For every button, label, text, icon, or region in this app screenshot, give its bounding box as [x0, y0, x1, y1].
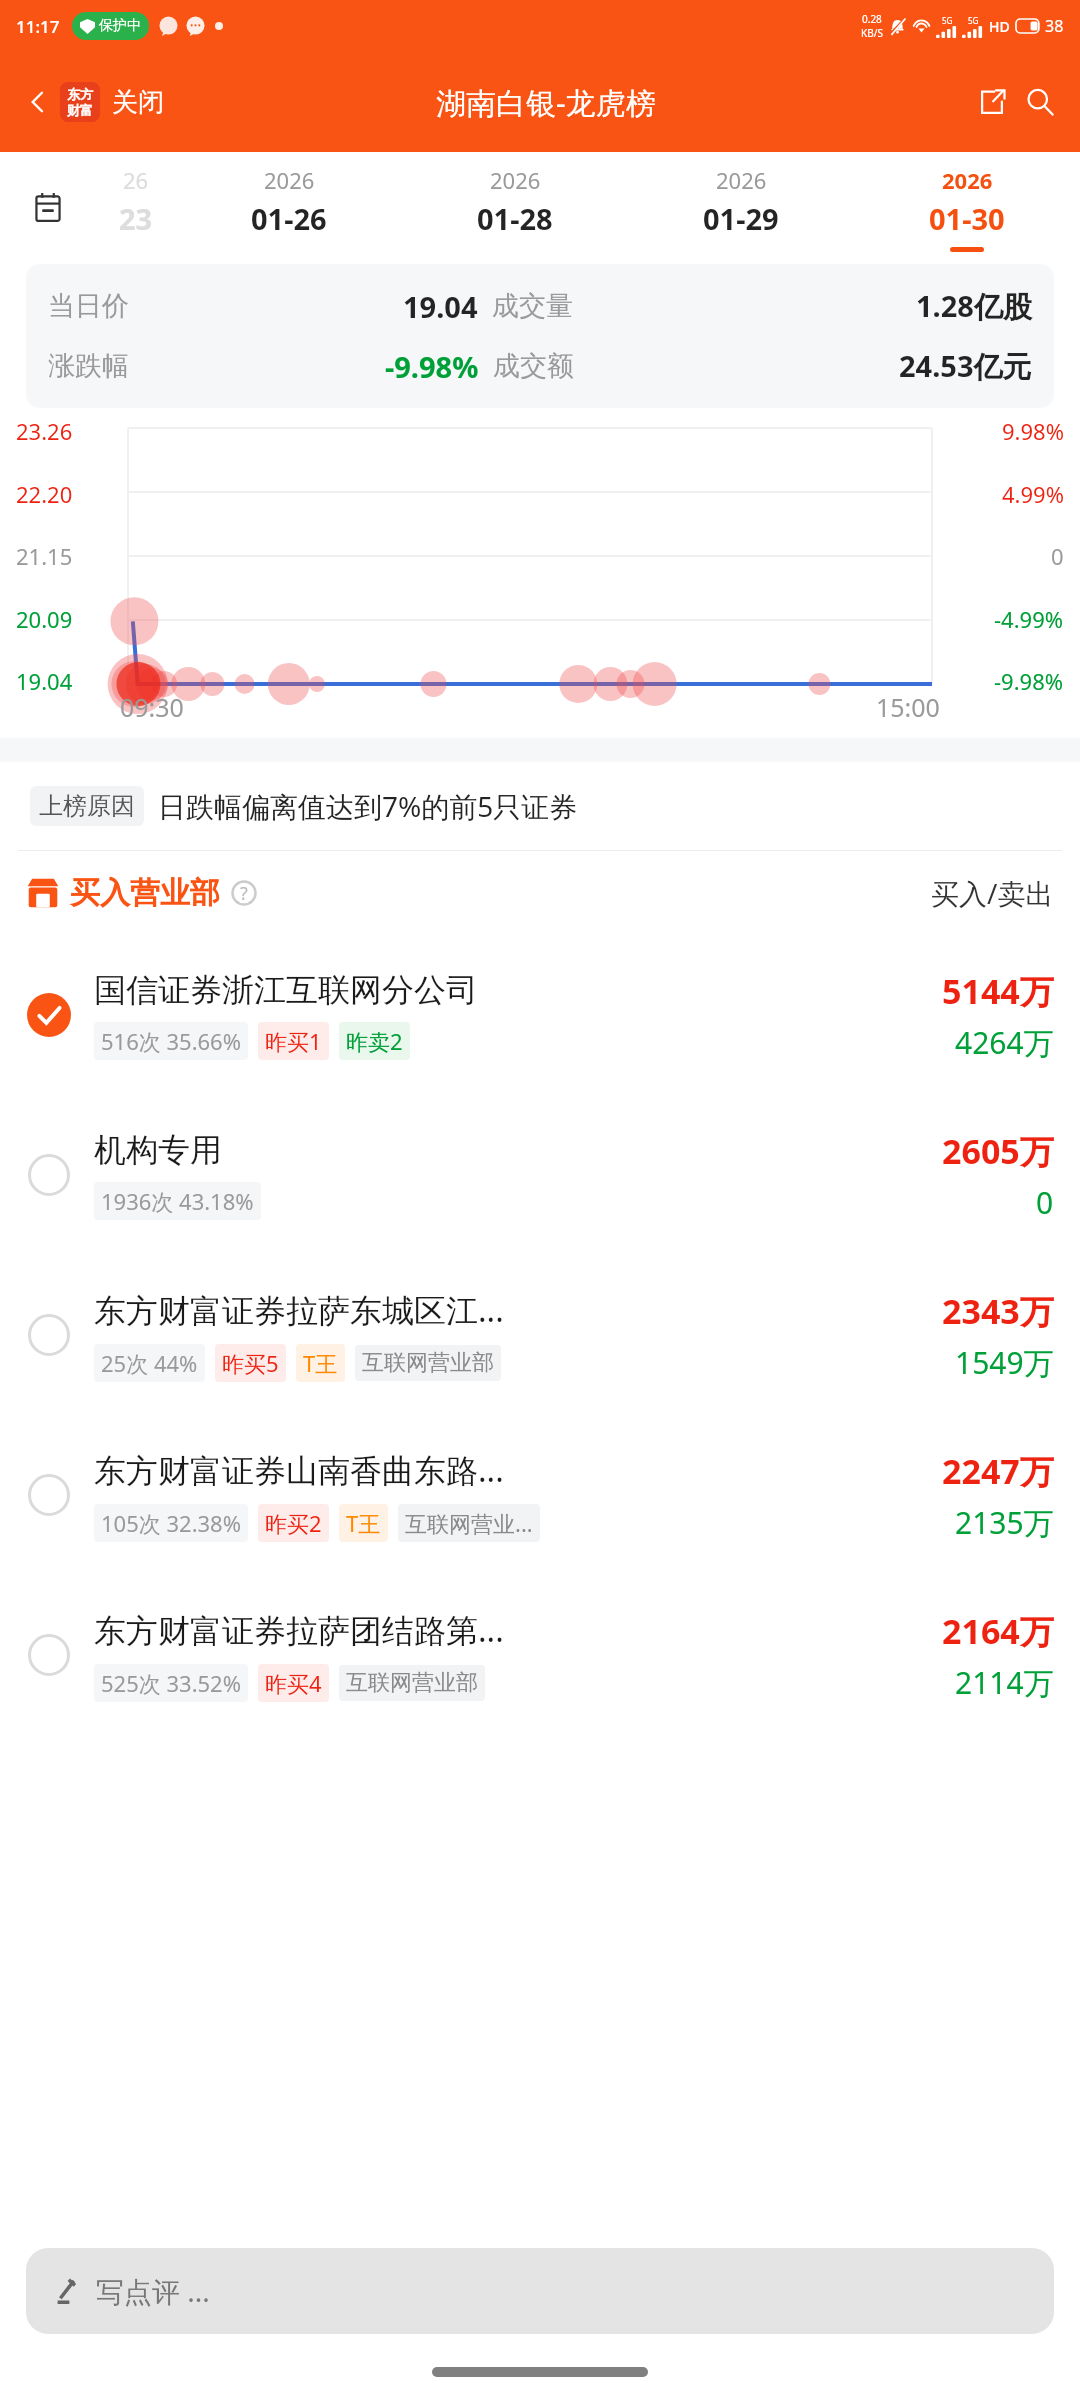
staticText: 0	[1051, 541, 1064, 571]
staticText: 1936次 43.18%	[101, 1186, 254, 1216]
staticText: 38	[1045, 15, 1064, 37]
button[interactable]: 26	[96, 152, 176, 264]
staticText: 2026	[264, 165, 315, 195]
staticText: 516次 35.66%	[101, 1026, 241, 1056]
button[interactable]: 写点评 ...	[26, 2248, 1054, 2334]
staticText: 2026	[716, 165, 767, 195]
staticText: 2164万	[942, 1608, 1054, 1654]
button[interactable]: 关闭	[112, 86, 164, 119]
button[interactable]: 分享	[968, 78, 1016, 126]
staticText: 成交额	[493, 349, 574, 383]
staticText: 湖南白银-龙虎榜	[436, 82, 656, 123]
staticText: 成交量	[492, 289, 573, 323]
staticText: 5G	[942, 15, 953, 26]
staticText: 2343万	[942, 1288, 1054, 1334]
staticText: 26	[123, 165, 149, 195]
staticText: 2114万	[955, 1662, 1054, 1703]
staticText: 0.28	[862, 12, 882, 26]
staticText: -4.99%	[994, 604, 1064, 634]
staticText: T王	[346, 1508, 381, 1538]
button[interactable]: 东方财富证券拉萨团结路第...	[0, 1575, 1080, 1735]
staticText: 2026	[942, 165, 993, 195]
staticText: 525次 33.52%	[101, 1668, 241, 1698]
staticText: 昨卖2	[346, 1026, 403, 1056]
staticText: 昨买2	[265, 1508, 322, 1538]
staticText: -9.98%	[994, 666, 1064, 696]
staticText: 21.15	[16, 541, 73, 571]
staticText: 涨跌幅	[48, 349, 129, 383]
staticText: 昨买1	[265, 1026, 322, 1056]
button[interactable]: 东方	[60, 82, 100, 122]
staticText: 互联网营业部	[346, 1669, 478, 1697]
staticText: KB/S	[861, 26, 883, 40]
staticText: 4.99%	[1002, 479, 1064, 509]
button[interactable]: 返回	[16, 80, 60, 124]
staticText: 0	[1036, 1182, 1054, 1223]
staticText: 日跌幅偏离值达到7%的前5只证券	[158, 787, 578, 825]
staticText: 11:17	[16, 15, 60, 38]
staticText: 上榜原因	[39, 791, 135, 821]
staticText: ?	[240, 881, 248, 906]
staticText: 2247万	[942, 1448, 1054, 1494]
staticText: 20.09	[16, 604, 73, 634]
staticText: 买入营业部	[70, 874, 220, 912]
staticText: 2026	[490, 165, 541, 195]
staticText: 保护中	[99, 17, 141, 35]
staticText: 2605万	[942, 1128, 1054, 1174]
staticText: 当日价	[48, 289, 129, 323]
staticText: 9.98%	[1002, 416, 1064, 446]
staticText: 4264万	[955, 1022, 1054, 1063]
button[interactable]: 上榜原因	[0, 762, 1080, 850]
staticText: 01-29	[703, 199, 779, 238]
staticText: 东方财富证券拉萨东城区江...	[94, 1288, 504, 1332]
staticText: 财富	[67, 102, 93, 118]
staticText: 互联网营业...	[405, 1508, 533, 1538]
staticText: 机构专用	[94, 1130, 222, 1170]
button[interactable]: 2026	[854, 152, 1080, 264]
button[interactable]: 国信证券浙江互联网分公司	[0, 935, 1080, 1095]
staticText: 东方财富证券拉萨团结路第...	[94, 1608, 504, 1652]
staticText: 买入/卖出	[931, 874, 1054, 912]
staticText: 105次 32.38%	[101, 1508, 241, 1538]
staticText: 昨买5	[222, 1348, 279, 1378]
staticText: 01-30	[929, 199, 1005, 238]
button[interactable]: 东方财富证券拉萨东城区江...	[0, 1255, 1080, 1415]
button[interactable]: 说明	[230, 879, 258, 907]
staticText: 东方财富证券山南香曲东路...	[94, 1448, 504, 1492]
staticText: 5144万	[942, 968, 1054, 1014]
button[interactable]: 2026	[402, 152, 628, 264]
staticText: 25次 44%	[101, 1348, 198, 1378]
button[interactable]: 机构专用	[0, 1095, 1080, 1255]
staticText: HD	[989, 17, 1010, 36]
staticText: 19.04	[16, 666, 73, 696]
button[interactable]: 2026	[176, 152, 402, 264]
staticText: 昨买4	[265, 1668, 322, 1698]
button[interactable]: 搜索	[1016, 78, 1064, 126]
staticText: 09:30	[120, 690, 184, 724]
staticText: 2135万	[955, 1502, 1054, 1543]
button[interactable]: 东方财富证券山南香曲东路...	[0, 1415, 1080, 1575]
staticText: 互联网营业部	[362, 1349, 494, 1377]
button[interactable]: 2026	[628, 152, 854, 264]
staticText: -9.98%	[385, 347, 479, 386]
staticText: 24.53亿元	[899, 346, 1032, 386]
staticText: 15:00	[876, 690, 940, 724]
staticText: T王	[303, 1348, 338, 1378]
staticText: 1.28亿股	[916, 286, 1032, 326]
staticText: 23	[119, 199, 153, 238]
staticText: 19.04	[403, 287, 478, 326]
staticText: 01-26	[251, 199, 327, 238]
staticText: 国信证券浙江互联网分公司	[94, 970, 478, 1010]
button[interactable]: 日历	[0, 152, 96, 264]
staticText: 5G	[968, 15, 979, 26]
staticText: 01-28	[477, 199, 553, 238]
staticText: 23.26	[16, 416, 73, 446]
staticText: 1549万	[955, 1342, 1054, 1383]
staticText: 写点评 ...	[96, 2272, 210, 2310]
staticText: 东方	[67, 86, 93, 102]
staticText: 22.20	[16, 479, 73, 509]
